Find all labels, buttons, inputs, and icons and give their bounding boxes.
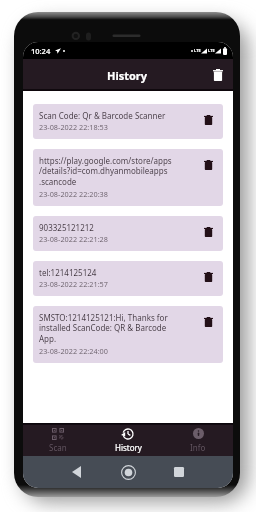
staticText: LTE [208, 48, 215, 53]
staticText: History [115, 442, 142, 453]
staticText: 23-08-2022 22:21:57 [39, 279, 108, 289]
button[interactable]: Delete entry [200, 158, 216, 171]
staticText: History [107, 68, 148, 83]
button[interactable]: History [93, 423, 163, 456]
staticText: 23-08-2022 22:24:00 [39, 346, 108, 356]
button[interactable]: Info [163, 423, 233, 456]
button[interactable]: Delete all history [209, 66, 227, 84]
button[interactable]: Delete entry [200, 113, 216, 126]
staticText: Scan Code: Qr & Barcode Scanner [39, 110, 166, 121]
button[interactable]: Recents [172, 465, 186, 479]
staticText: Scan [49, 442, 67, 453]
button[interactable]: Delete entry [200, 315, 216, 328]
staticText: 10:24 [31, 46, 51, 56]
button[interactable]: https://play.google.com/store/apps /deta… [33, 149, 223, 206]
button[interactable]: Home [120, 464, 136, 480]
staticText: 23-08-2022 22:21:28 [39, 234, 108, 244]
staticText: 23-08-2022 22:18:53 [39, 122, 108, 132]
button[interactable]: Scan [23, 423, 93, 456]
button[interactable]: Delete entry [200, 225, 216, 238]
staticText: tel:1214125124 [39, 267, 97, 278]
button[interactable]: 903325121212 [33, 216, 223, 251]
button[interactable]: Back [69, 465, 83, 479]
button[interactable]: tel:1214125124 [33, 261, 223, 296]
staticText: Info [190, 442, 206, 453]
button[interactable]: Scan Code: Qr & Barcode Scanner [33, 104, 223, 139]
staticText: SMSTO:1214125121:Hi, Thanks for installe… [39, 312, 168, 345]
staticText: 903325121212 [39, 222, 94, 233]
staticText: 23-08-2022 22:20:38 [39, 189, 108, 199]
staticText: https://play.google.com/store/apps /deta… [39, 155, 172, 188]
button[interactable]: Delete entry [200, 270, 216, 283]
button[interactable]: SMSTO:1214125121:Hi, Thanks for installe… [33, 306, 223, 363]
staticText: LTE [194, 48, 201, 53]
